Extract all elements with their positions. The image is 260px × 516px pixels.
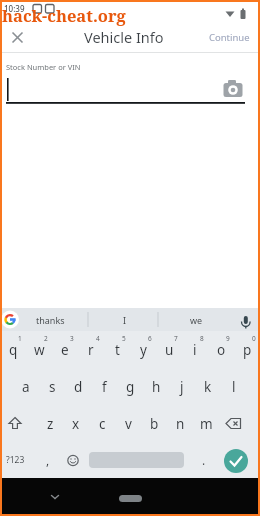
button[interactable] xyxy=(119,495,142,502)
staticText: . xyxy=(202,452,206,468)
button[interactable]: e xyxy=(52,331,78,368)
button[interactable]: I xyxy=(95,308,155,331)
staticText: e xyxy=(61,341,69,359)
staticText: Continue xyxy=(209,31,250,44)
staticText: hack-cheat.org xyxy=(2,4,126,26)
staticText: , xyxy=(46,452,50,468)
staticText: ?123 xyxy=(6,454,25,466)
button[interactable]: n xyxy=(167,405,193,442)
staticText: 0 xyxy=(252,334,256,343)
button[interactable]: j xyxy=(169,368,195,405)
button[interactable]: d xyxy=(65,368,91,405)
staticText: m xyxy=(200,415,213,433)
button[interactable]: Stock Number or VIN xyxy=(0,53,260,105)
staticText: 5 xyxy=(122,334,126,343)
button[interactable]: z xyxy=(37,405,63,442)
staticText: 6 xyxy=(148,334,152,343)
button[interactable] xyxy=(1,405,29,442)
staticText: l xyxy=(232,378,236,396)
button[interactable]: ?123 xyxy=(0,442,30,478)
staticText: g xyxy=(126,378,135,396)
button[interactable]: i xyxy=(182,331,208,368)
staticText: 8 xyxy=(200,334,204,343)
button[interactable]: o xyxy=(208,331,234,368)
button[interactable]: g xyxy=(117,368,143,405)
staticText: i xyxy=(193,341,197,359)
button[interactable]: w xyxy=(26,331,52,368)
button[interactable]: f xyxy=(91,368,117,405)
staticText: t xyxy=(115,341,120,359)
button[interactable]: v xyxy=(115,405,141,442)
button[interactable]: l xyxy=(221,368,247,405)
button[interactable]: x xyxy=(63,405,89,442)
staticText: c xyxy=(99,415,106,433)
button[interactable]: Continue xyxy=(209,31,250,44)
staticText: u xyxy=(165,341,174,359)
staticText: f xyxy=(102,378,107,396)
staticText: w xyxy=(34,341,45,359)
staticText: s xyxy=(49,378,56,396)
staticText: d xyxy=(74,378,83,396)
button[interactable]: a xyxy=(13,368,39,405)
staticText: 4 xyxy=(96,334,100,343)
staticText: h xyxy=(152,378,161,396)
staticText: v xyxy=(125,415,132,433)
button[interactable]: s xyxy=(39,368,65,405)
staticText: n xyxy=(176,415,185,433)
button[interactable] xyxy=(62,442,84,478)
button[interactable]: u xyxy=(156,331,182,368)
button[interactable]: b xyxy=(141,405,167,442)
staticText: Stock Number or VIN xyxy=(6,62,81,72)
button[interactable]: h xyxy=(143,368,169,405)
button[interactable]: p xyxy=(234,331,260,368)
button[interactable] xyxy=(7,27,27,47)
staticText: 2 xyxy=(44,334,48,343)
button[interactable] xyxy=(218,405,248,442)
button[interactable]: r xyxy=(78,331,104,368)
button[interactable]: y xyxy=(130,331,156,368)
button[interactable]: thanks xyxy=(20,308,80,331)
staticText: thanks xyxy=(36,314,65,326)
button[interactable] xyxy=(224,449,248,473)
staticText: q xyxy=(9,341,18,359)
button[interactable] xyxy=(40,482,70,512)
button[interactable]: k xyxy=(195,368,221,405)
staticText: r xyxy=(88,341,94,359)
staticText: k xyxy=(204,378,212,396)
staticText: Vehicle Info xyxy=(84,27,164,47)
staticText: j xyxy=(180,378,184,396)
staticText: 1 xyxy=(18,334,22,343)
staticText: p xyxy=(243,341,252,359)
staticText: we xyxy=(190,314,203,326)
button[interactable]: m xyxy=(193,405,219,442)
button[interactable]: q xyxy=(0,331,26,368)
staticText: o xyxy=(217,341,226,359)
staticText: x xyxy=(72,415,80,433)
button[interactable]: , xyxy=(36,442,60,478)
staticText: 10:39 xyxy=(4,3,25,14)
staticText: a xyxy=(22,378,30,396)
staticText: I xyxy=(123,314,127,326)
button[interactable]: t xyxy=(104,331,130,368)
staticText: 3 xyxy=(70,334,74,343)
staticText: y xyxy=(140,341,147,359)
button[interactable]: we xyxy=(166,308,226,331)
staticText: b xyxy=(150,415,159,433)
staticText: 9 xyxy=(226,334,230,343)
button[interactable]: . xyxy=(193,442,215,478)
button[interactable]: c xyxy=(89,405,115,442)
staticText: 7 xyxy=(174,334,178,343)
staticText: z xyxy=(47,415,54,433)
